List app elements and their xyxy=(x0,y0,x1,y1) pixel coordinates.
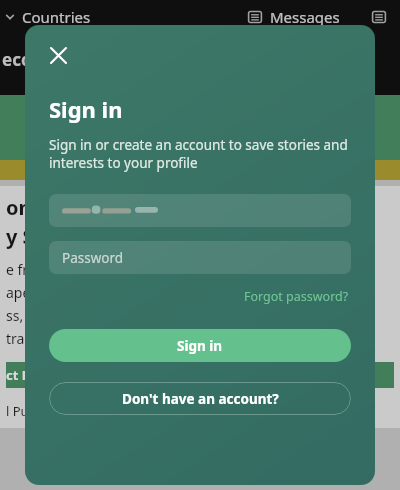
button[interactable]: Close xyxy=(39,36,77,74)
staticText: Sign in xyxy=(177,337,223,355)
button[interactable]: Forgot password? xyxy=(242,286,351,307)
staticText: Don't have an account? xyxy=(122,390,279,408)
button[interactable]: ct P xyxy=(6,362,394,388)
button[interactable]: Sign in xyxy=(49,329,351,362)
button[interactable]: Don't have an account? xyxy=(49,382,351,415)
button[interactable]: Password xyxy=(49,241,351,274)
button[interactable]: Countries xyxy=(22,7,91,27)
staticText: ct P xyxy=(6,366,30,384)
staticText: ape xyxy=(6,283,31,302)
staticText: Password xyxy=(62,249,124,267)
button[interactable]: Articles xyxy=(368,6,390,28)
staticText: Countries xyxy=(22,7,91,27)
staticText: Messages xyxy=(270,7,340,27)
staticText: ss, xyxy=(6,306,24,325)
staticText: omic – Ca xyxy=(6,194,100,221)
staticText: Sign in xyxy=(49,94,123,124)
staticText: l Pu xyxy=(6,402,29,420)
staticText: Forgot password? xyxy=(244,288,349,305)
staticText: eco xyxy=(2,48,32,71)
button[interactable]: Messages xyxy=(246,7,340,27)
staticText: Sign in or create an account to save sto… xyxy=(49,136,348,172)
button[interactable] xyxy=(49,194,351,227)
staticText: e fr xyxy=(6,260,29,279)
staticText: tra xyxy=(6,329,25,348)
staticText: y Sy ary Sys xyxy=(6,223,131,250)
